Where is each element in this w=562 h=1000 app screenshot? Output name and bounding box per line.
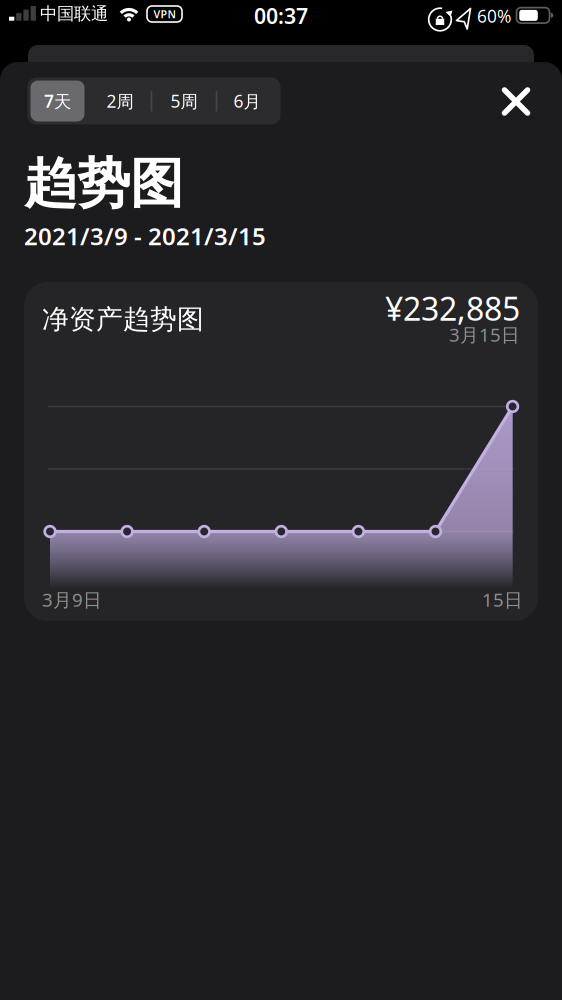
staticText: 6月 [233,89,260,112]
button[interactable]: 7天 [30,80,84,121]
button[interactable]: 5周 [153,77,215,124]
staticText: 00:37 [254,1,308,30]
staticText: 60% [477,4,511,27]
staticText: VPN [153,7,175,21]
button[interactable]: 2周 [89,77,151,124]
button[interactable]: Close [494,80,538,124]
staticText: 中国联通 [40,3,108,24]
staticText: ¥232,885 [385,287,520,329]
staticText: 2周 [106,89,133,112]
button[interactable]: 6月 [216,77,278,124]
staticText: 净资产趋势图 [42,303,204,336]
staticText: 2021/3/9 - 2021/3/15 [24,220,266,252]
staticText: 5周 [170,89,197,112]
staticText: 15日 [482,587,523,612]
staticText: 7天 [44,89,71,112]
staticText: 3月9日 [42,587,102,612]
staticText: 3月15日 [449,322,520,347]
staticText: 趋势图 [24,151,183,216]
